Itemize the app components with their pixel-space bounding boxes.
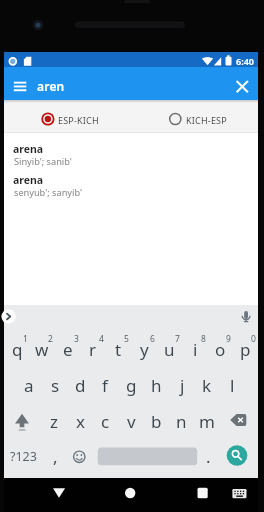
staticText: 6: [150, 333, 155, 345]
staticText: d: [75, 374, 86, 396]
staticText: c: [101, 410, 110, 432]
staticText: p: [240, 338, 251, 360]
button[interactable]: f: [92, 374, 118, 396]
staticText: 1: [23, 333, 28, 345]
staticText: i: [193, 338, 198, 360]
button[interactable]: e: [55, 338, 81, 360]
button[interactable]: [238, 306, 255, 325]
staticText: z: [50, 410, 58, 432]
button[interactable]: [98, 448, 198, 466]
staticText: arena: [13, 173, 44, 187]
button[interactable]: [38, 105, 110, 131]
staticText: y: [140, 338, 149, 360]
button[interactable]: w: [29, 338, 55, 360]
staticText: n: [176, 410, 187, 432]
staticText: aren: [37, 78, 65, 94]
button[interactable]: p: [232, 338, 258, 360]
staticText: senyub'; sanyib': [14, 186, 83, 199]
button[interactable]: [118, 483, 142, 505]
button[interactable]: q: [4, 338, 30, 360]
staticText: g: [126, 374, 137, 396]
button[interactable]: t: [105, 338, 131, 360]
button[interactable]: x: [67, 410, 93, 432]
button[interactable]: o: [207, 338, 233, 360]
staticText: arena: [13, 142, 44, 156]
button[interactable]: l: [219, 374, 245, 396]
button[interactable]: n: [168, 410, 194, 432]
button[interactable]: [69, 446, 90, 467]
button[interactable]: a: [16, 374, 42, 396]
button[interactable]: ,: [42, 445, 68, 467]
button[interactable]: [191, 483, 215, 505]
button[interactable]: .: [195, 445, 221, 467]
button[interactable]: k: [194, 374, 220, 396]
staticText: s: [51, 374, 60, 396]
button[interactable]: [229, 484, 250, 504]
button[interactable]: g: [118, 374, 144, 396]
staticText: 5: [124, 333, 129, 345]
staticText: a: [24, 374, 34, 396]
button[interactable]: [166, 105, 238, 131]
staticText: 7: [175, 333, 180, 345]
staticText: ?123: [10, 448, 37, 465]
staticText: 4: [99, 333, 104, 345]
staticText: k: [202, 374, 212, 396]
staticText: 0: [251, 333, 256, 345]
button[interactable]: d: [67, 374, 93, 396]
button[interactable]: [6, 73, 34, 100]
staticText: Sinyib'; sanib': [14, 155, 72, 168]
button[interactable]: u: [156, 338, 182, 360]
button[interactable]: s: [42, 374, 68, 396]
button[interactable]: b: [143, 410, 169, 432]
staticText: q: [12, 338, 23, 360]
staticText: .: [206, 445, 211, 467]
staticText: r: [89, 338, 97, 360]
staticText: m: [199, 410, 215, 432]
staticText: e: [63, 338, 73, 360]
button[interactable]: v: [118, 410, 144, 432]
staticText: 3: [74, 333, 79, 345]
staticText: x: [76, 410, 85, 432]
staticText: ,: [53, 445, 58, 467]
button[interactable]: [47, 483, 71, 505]
staticText: o: [215, 338, 226, 360]
staticText: ESP-KICH: [58, 114, 99, 126]
staticText: 6:40: [236, 55, 254, 67]
button[interactable]: y: [131, 338, 157, 360]
staticText: u: [164, 338, 175, 360]
button[interactable]: m: [194, 410, 220, 432]
button[interactable]: z: [41, 410, 67, 432]
staticText: w: [35, 338, 49, 360]
button[interactable]: [1, 306, 17, 327]
staticText: 2: [48, 333, 53, 345]
staticText: t: [115, 338, 122, 360]
button[interactable]: c: [92, 410, 118, 432]
button[interactable]: h: [143, 374, 169, 396]
button[interactable]: [228, 410, 250, 430]
staticText: b: [151, 410, 162, 432]
button[interactable]: ?123: [7, 445, 39, 467]
staticText: v: [127, 410, 136, 432]
staticText: f: [102, 374, 108, 396]
staticText: KICH-ESP: [186, 114, 227, 126]
staticText: 8: [201, 333, 206, 345]
button[interactable]: [230, 74, 256, 100]
staticText: l: [230, 374, 235, 396]
button[interactable]: j: [169, 374, 195, 396]
button[interactable]: r: [80, 338, 106, 360]
button[interactable]: [226, 445, 248, 467]
staticText: j: [180, 374, 185, 396]
staticText: 9: [226, 333, 231, 345]
staticText: h: [151, 374, 162, 396]
button[interactable]: [10, 410, 34, 432]
button[interactable]: i: [182, 338, 208, 360]
